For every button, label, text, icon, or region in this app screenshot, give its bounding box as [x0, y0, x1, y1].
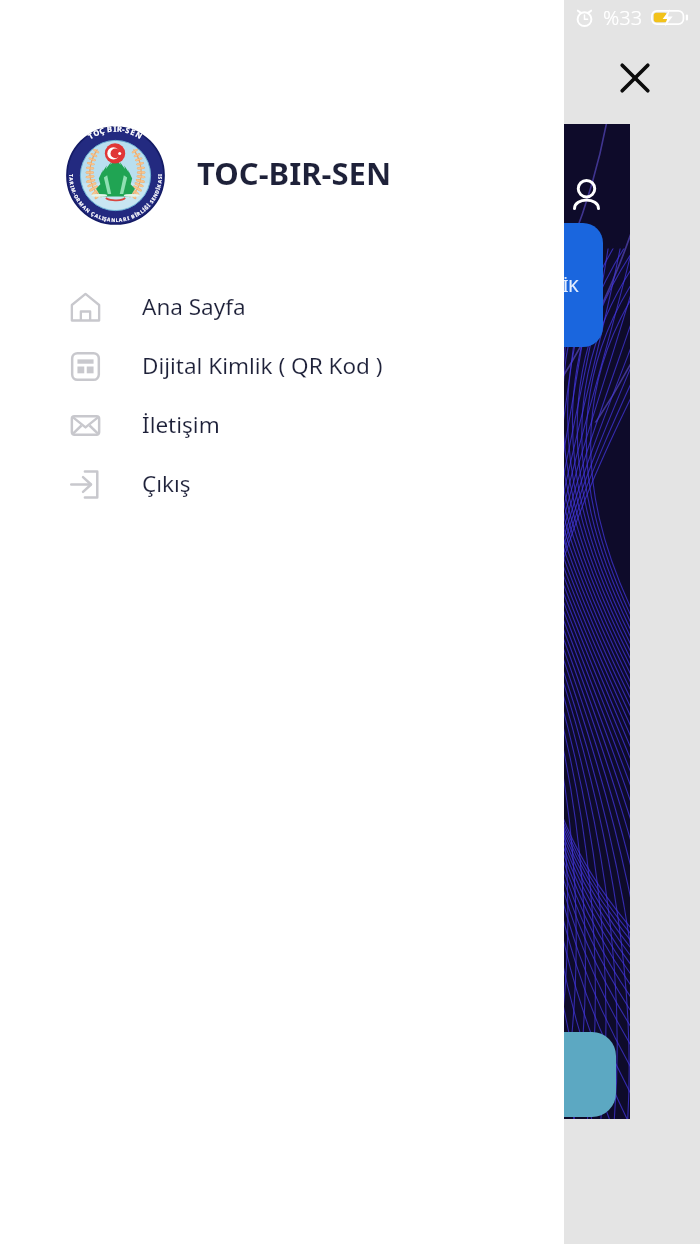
button[interactable]: DİJİTAL KİMLİK — [440, 223, 603, 347]
button[interactable]: İletişim — [0, 395, 564, 454]
button[interactable]: Kapat — [605, 48, 665, 108]
button[interactable] — [420, 1032, 616, 1117]
button[interactable]: Profil — [558, 167, 614, 223]
button[interactable]: Ana Sayfa — [0, 277, 564, 336]
button[interactable]: Dijital Kimlik ( QR Kod ) — [0, 336, 564, 395]
staticText: DİJİTAL KİMLİK — [464, 274, 579, 296]
staticText: Dijital Kimlik ( QR Kod ) — [142, 350, 383, 381]
staticText: İletişim — [142, 409, 220, 440]
staticText: Ana Sayfa — [142, 291, 246, 322]
staticText: %33 — [603, 4, 643, 31]
staticText: Çıkış — [142, 468, 191, 499]
button[interactable]: Çıkış — [0, 454, 564, 513]
staticText: TOC-BIR-SEN — [197, 152, 392, 194]
